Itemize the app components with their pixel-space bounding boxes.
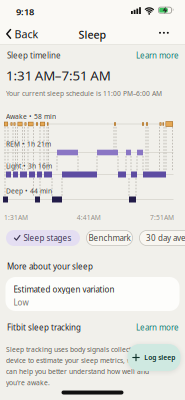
staticText: More about your sleep bbox=[7, 261, 93, 272]
staticText: Back bbox=[14, 27, 38, 41]
staticText: Sleep bbox=[78, 27, 106, 42]
staticText: Fitbit sleep tracking bbox=[7, 322, 81, 333]
staticText: Sleep tracking uses body signals collect… bbox=[6, 345, 154, 387]
button[interactable]: 30 day average bbox=[139, 230, 185, 246]
staticText: Low bbox=[13, 297, 28, 308]
button[interactable]: Benchmark bbox=[86, 230, 133, 246]
button[interactable]: Log sleep bbox=[127, 344, 180, 371]
button[interactable]: Learn more bbox=[136, 322, 179, 333]
staticText: Sleep stages bbox=[23, 233, 71, 243]
staticText: Learn more bbox=[136, 322, 179, 333]
button[interactable]: Learn more bbox=[136, 50, 179, 61]
staticText: Estimated oxygen variation bbox=[13, 284, 114, 295]
staticText: Deep • 44 min bbox=[6, 186, 52, 195]
staticText: Awake • 58 min bbox=[6, 112, 56, 121]
staticText: 1:31AM bbox=[4, 213, 28, 222]
staticText: Sleep timeline bbox=[7, 50, 61, 61]
staticText: 7:51AM bbox=[150, 213, 174, 222]
button[interactable] bbox=[159, 32, 169, 34]
staticText: REM • 1h 21m bbox=[6, 139, 51, 148]
button[interactable]: Back bbox=[6, 27, 38, 41]
staticText: Benchmark bbox=[88, 233, 130, 243]
staticText: Learn more bbox=[136, 50, 179, 61]
staticText: Light • 3h 16m bbox=[6, 161, 52, 170]
staticText: 4:41AM bbox=[77, 213, 101, 222]
staticText: Log sleep bbox=[144, 353, 175, 362]
staticText: 30 day average bbox=[146, 233, 185, 243]
button[interactable]: Sleep stages bbox=[6, 230, 80, 246]
staticText: Your current sleep schedule is 11:00 PM–… bbox=[6, 89, 162, 98]
staticText: 1:31 AM–7:51 AM bbox=[6, 66, 111, 84]
staticText: 9:18 bbox=[16, 5, 34, 18]
button[interactable]: Estimated oxygen variation bbox=[5, 277, 179, 311]
